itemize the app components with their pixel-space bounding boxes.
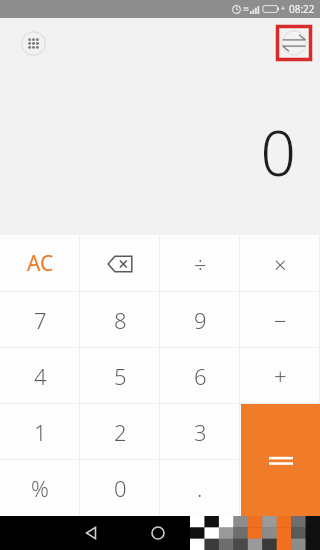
staticText: + [281,4,286,14]
staticText: 35 [243,6,249,13]
button[interactable]: % [0,460,80,516]
button[interactable]: 4 [0,348,80,404]
staticText: . [197,473,203,503]
button[interactable] [80,235,160,292]
button[interactable]: . [160,460,240,516]
button[interactable]: + [240,348,320,404]
button[interactable]: Back [76,518,106,548]
staticText: 08:22 [289,2,315,16]
button[interactable]: 2 [80,404,160,460]
button[interactable]: Switch mode [276,25,312,61]
button[interactable]: 8 [80,292,160,348]
button[interactable]: 9 [160,292,240,348]
staticText: 8 [114,305,127,335]
staticText: + [274,361,287,391]
staticText: 4 [34,361,47,391]
button[interactable]: Home [143,518,173,548]
staticText: 0 [114,473,127,503]
staticText: × [274,249,287,279]
button[interactable]: 6 [160,348,240,404]
button[interactable]: − [240,292,320,348]
button[interactable]: Menu [21,31,46,56]
button[interactable]: Equals [241,404,320,516]
staticText: 0 [260,110,296,194]
button[interactable]: 3 [160,404,240,460]
staticText: % [31,473,49,503]
staticText: − [274,305,287,335]
button[interactable]: 5 [80,348,160,404]
staticText: ÷ [194,249,207,279]
staticText: 3 [194,417,207,447]
staticText: 9 [194,305,207,335]
staticText: 7 [34,305,47,335]
button[interactable]: 7 [0,292,80,348]
button[interactable]: ÷ [160,235,240,292]
staticText: 5 [114,361,127,391]
staticText: 2 [114,417,127,447]
button[interactable]: AC [0,235,80,292]
button[interactable]: × [240,235,320,292]
button[interactable]: 1 [0,404,80,460]
staticText: 6 [194,361,207,391]
staticText: 1 [34,417,47,447]
button[interactable]: 0 [80,460,160,516]
staticText: AC [27,249,54,278]
